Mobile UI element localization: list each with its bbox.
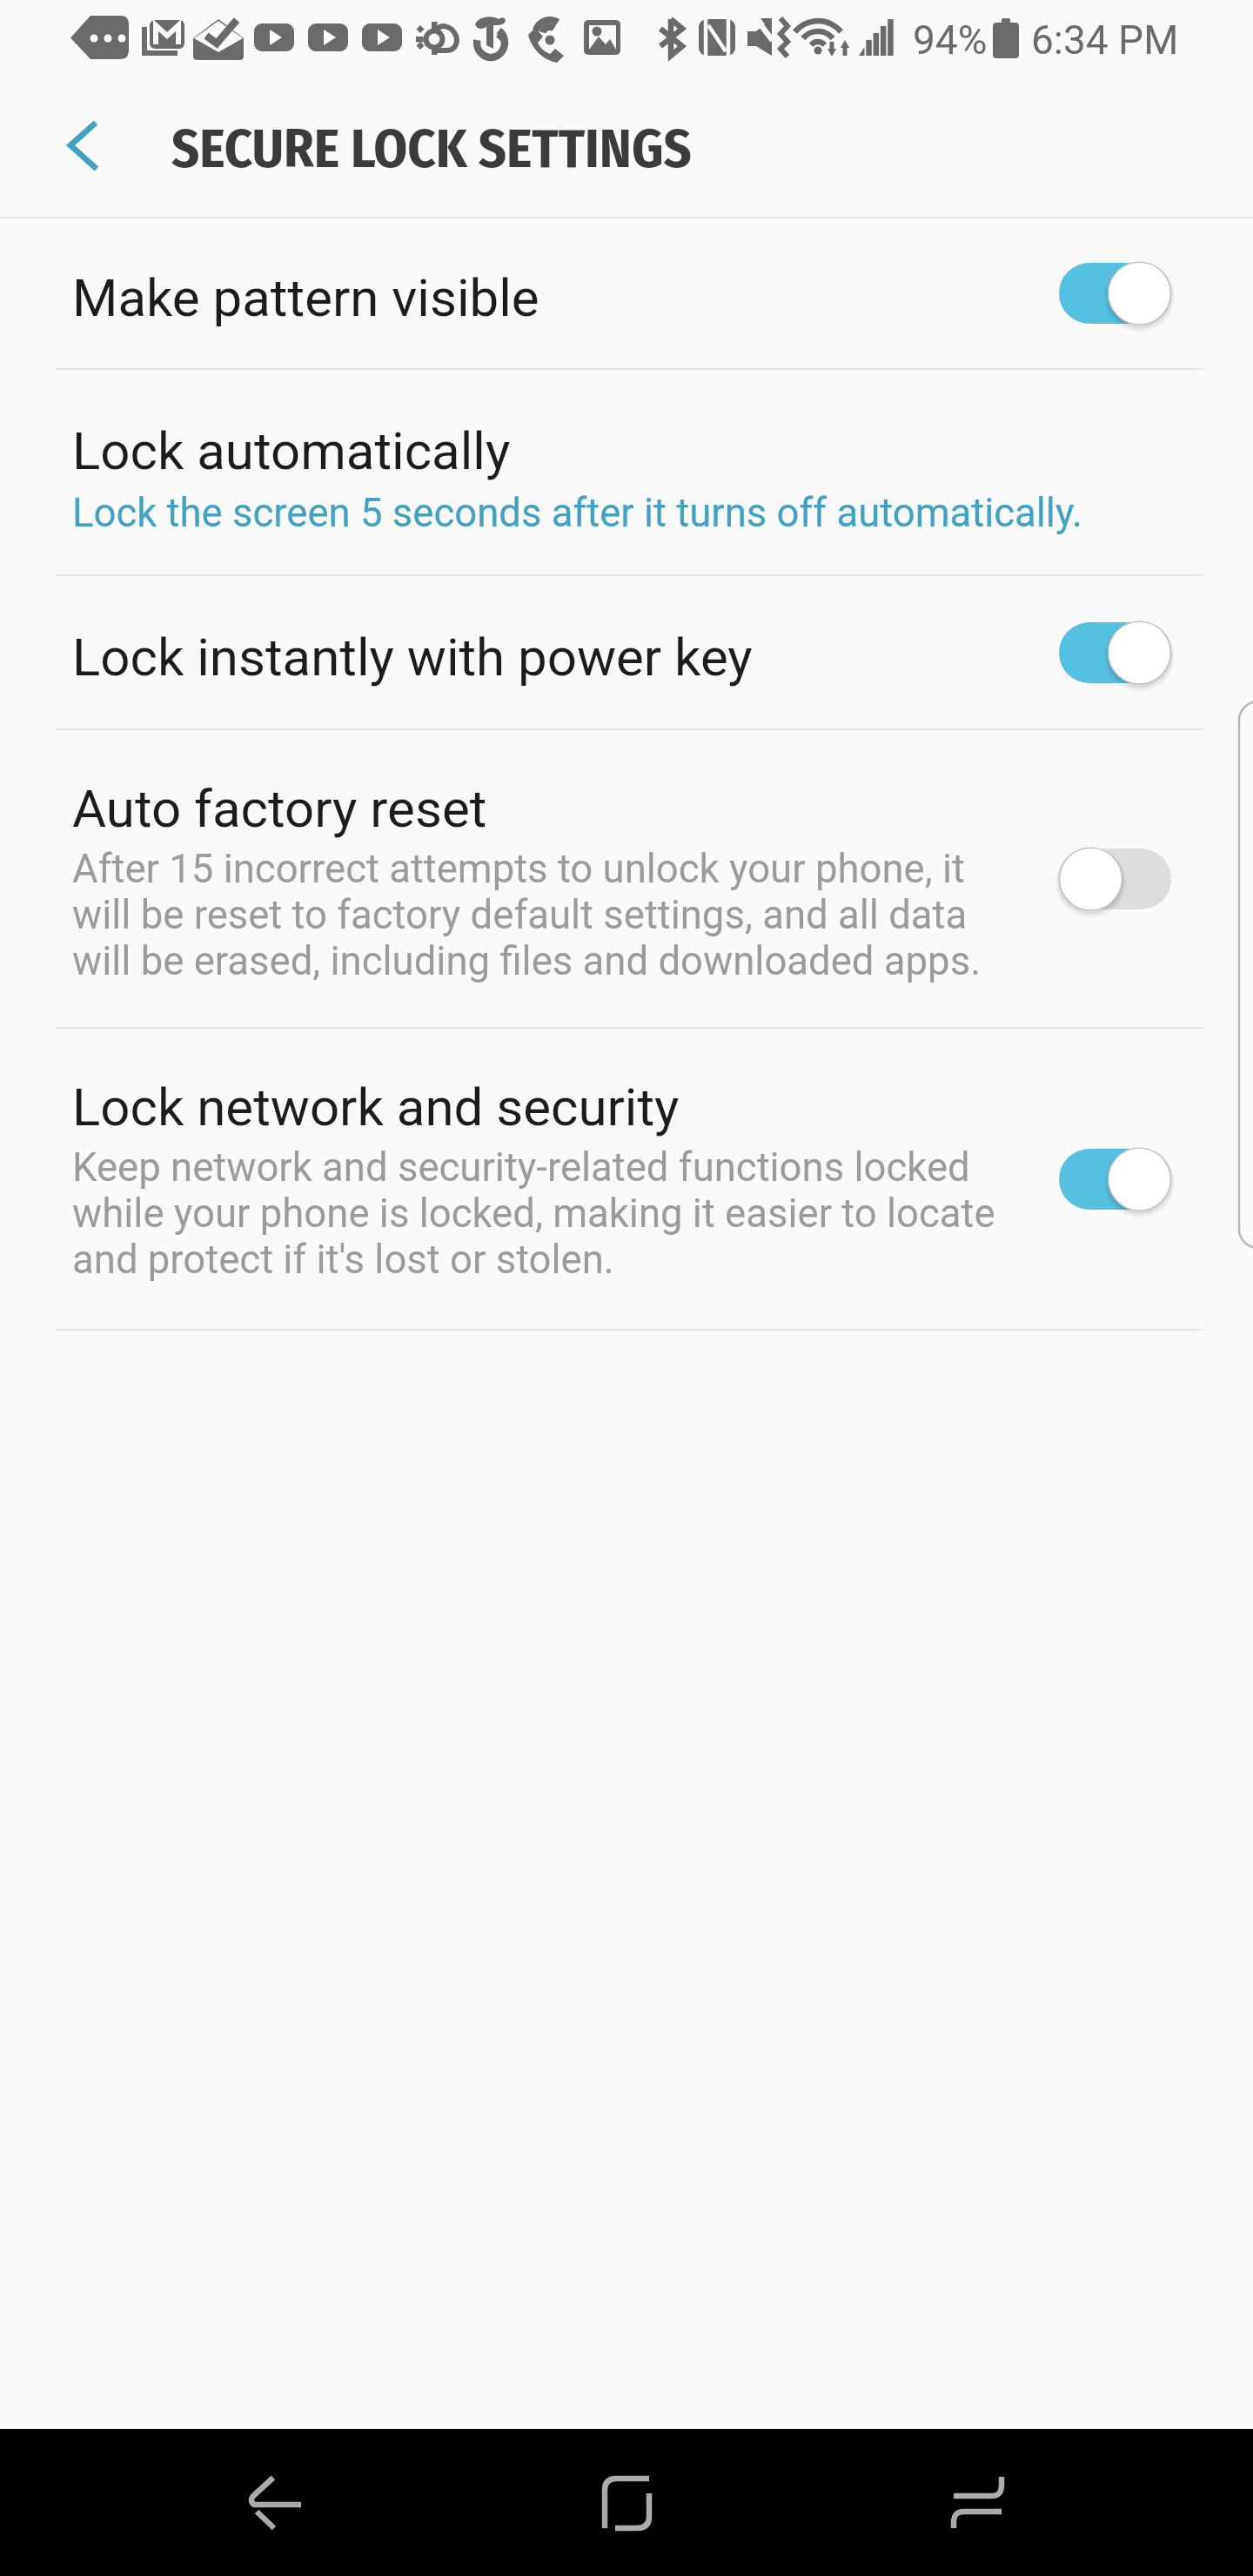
button[interactable]: Recent apps	[947, 2474, 1018, 2546]
staticText: Keep network and security-related functi…	[72, 1144, 970, 1191]
staticText: After 15 incorrect attempts to unlock yo…	[72, 846, 965, 892]
button[interactable]: Auto factory reset	[0, 730, 1253, 1027]
staticText: will be reset to factory default setting…	[72, 892, 968, 938]
staticText: Lock the screen 5 seconds after it turns…	[72, 490, 1083, 536]
staticText: Lock instantly with power key	[72, 627, 753, 688]
button[interactable]: Lock network and security	[0, 1029, 1253, 1329]
staticText: 6:34 PM	[1031, 17, 1179, 64]
button[interactable]: Lock automatically	[0, 370, 1253, 574]
staticText: Auto factory reset	[72, 778, 487, 839]
button[interactable]: Switch on	[1059, 252, 1171, 334]
staticText: 94%	[913, 17, 988, 64]
staticText: Make pattern visible	[72, 267, 539, 328]
button[interactable]: Make pattern visible	[0, 218, 1253, 368]
button[interactable]: Switch on	[1059, 612, 1171, 694]
staticText: will be erased, including files and down…	[72, 938, 982, 984]
button[interactable]: Navigate up	[36, 111, 131, 180]
staticText: while your phone is locked, making it ea…	[72, 1191, 995, 1237]
staticText: Lock automatically	[72, 420, 511, 481]
staticText: Lock network and security	[72, 1077, 680, 1137]
staticText: SECURE LOCK SETTINGS	[171, 117, 692, 181]
button[interactable]: Lock instantly with power key	[0, 576, 1253, 728]
button[interactable]: Home	[597, 2474, 668, 2546]
button[interactable]: Back	[247, 2474, 318, 2546]
staticText: and protect if it's lost or stolen.	[72, 1237, 614, 1283]
button[interactable]: Switch off	[1059, 838, 1171, 920]
button[interactable]: Switch on	[1059, 1138, 1171, 1220]
